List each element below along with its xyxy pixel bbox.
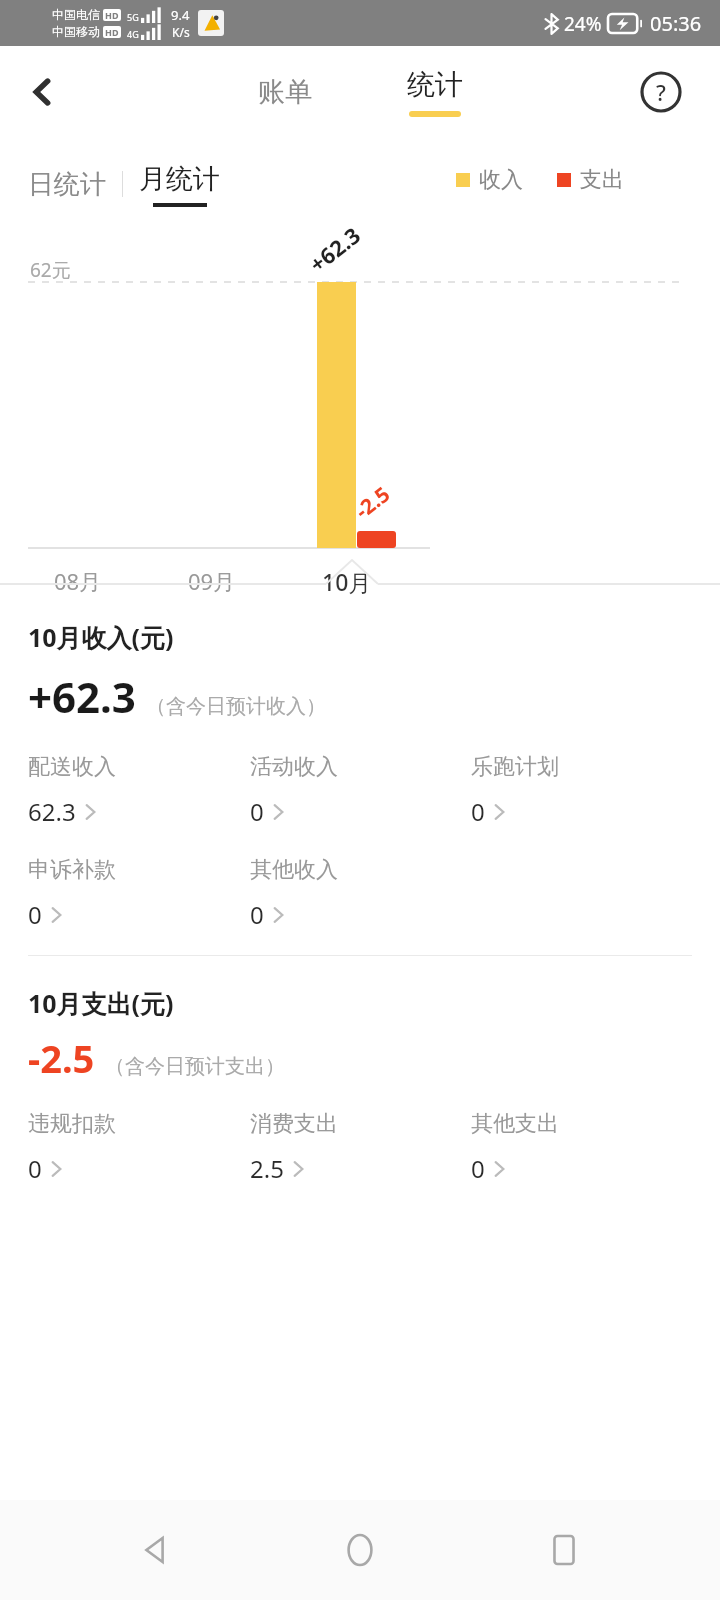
button[interactable]: 日统计 xyxy=(28,149,106,219)
button[interactable]: 消费支出 xyxy=(250,1110,346,1187)
staticText: 其他支出 xyxy=(471,1110,559,1138)
staticText: 08月 xyxy=(54,566,102,596)
staticText: （含今日预计收入） xyxy=(146,694,326,719)
staticText: 账单 xyxy=(258,75,312,109)
button[interactable]: 乐跑计划 xyxy=(471,753,567,830)
button[interactable]: Help xyxy=(638,69,684,115)
staticText: +62.3 xyxy=(28,668,136,725)
staticText: 月统计 xyxy=(139,162,220,196)
staticText: 支出 xyxy=(580,166,624,194)
button[interactable]: Back xyxy=(14,63,72,121)
staticText: 0 xyxy=(28,1152,42,1185)
staticText: 违规扣款 xyxy=(28,1110,116,1138)
staticText: 0 xyxy=(250,795,264,828)
staticText: 活动收入 xyxy=(250,753,338,781)
staticText: 中国电信 xyxy=(52,7,100,22)
staticText: 其他收入 xyxy=(250,856,338,884)
staticText: 24% xyxy=(564,11,602,37)
staticText: 4G xyxy=(127,28,139,40)
staticText: 9.4 xyxy=(171,6,190,24)
staticText: 10月收入(元) xyxy=(28,620,174,654)
staticText: +62.3 xyxy=(303,220,366,278)
staticText: 配送收入 xyxy=(28,753,116,781)
staticText: -2.5 xyxy=(28,1032,95,1084)
button[interactable]: 统计 xyxy=(360,57,510,127)
staticText: 申诉补款 xyxy=(28,856,116,884)
staticText: 0 xyxy=(28,898,42,931)
staticText: 62.3 xyxy=(28,795,76,828)
staticText: K/s xyxy=(172,24,190,40)
button[interactable]: 违规扣款 xyxy=(28,1110,124,1187)
button[interactable]: 活动收入 xyxy=(250,753,346,830)
staticText: 5G xyxy=(127,11,139,23)
staticText: 乐跑计划 xyxy=(471,753,559,781)
staticText: 0 xyxy=(471,1152,485,1185)
staticText: 0 xyxy=(250,898,264,931)
staticText: 中国移动 xyxy=(52,24,100,39)
staticText: HD xyxy=(105,26,119,38)
button[interactable]: Recent apps xyxy=(516,1502,612,1598)
button[interactable]: 月统计 xyxy=(139,149,220,219)
staticText: 0 xyxy=(471,795,485,828)
staticText: （含今日预计支出） xyxy=(105,1054,285,1079)
button[interactable]: 账单 xyxy=(210,57,360,127)
staticText: HD xyxy=(105,9,119,21)
staticText: 日统计 xyxy=(28,168,106,201)
staticText: 消费支出 xyxy=(250,1110,338,1138)
staticText: 统计 xyxy=(407,67,463,102)
staticText: ? xyxy=(656,77,666,107)
staticText: 2.5 xyxy=(250,1152,284,1185)
button[interactable]: 其他支出 xyxy=(471,1110,567,1187)
button[interactable]: 申诉补款 xyxy=(28,856,124,933)
staticText: 收入 xyxy=(479,166,523,194)
staticText: 10月支出(元) xyxy=(28,986,174,1020)
staticText: 10月 xyxy=(322,566,372,597)
button[interactable]: 配送收入 xyxy=(28,753,124,830)
staticText: 62元 xyxy=(30,257,71,283)
button[interactable]: Home xyxy=(312,1502,408,1598)
button[interactable]: Back xyxy=(108,1502,204,1598)
staticText: 05:36 xyxy=(650,10,702,37)
staticText: -2.5 xyxy=(349,480,396,525)
staticText: 09月 xyxy=(188,566,236,596)
button[interactable]: 其他收入 xyxy=(250,856,346,933)
